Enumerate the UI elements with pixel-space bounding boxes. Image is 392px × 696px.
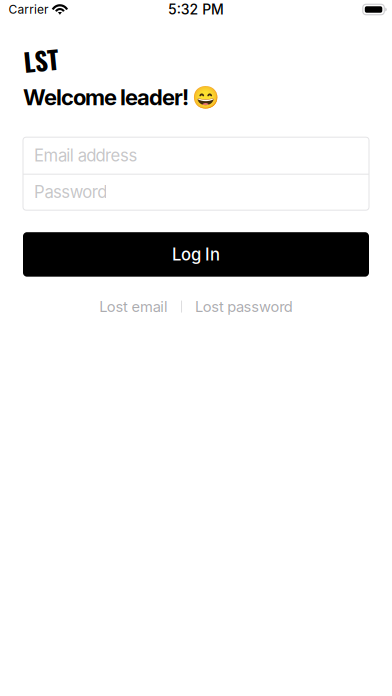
staticText: Carrier: [8, 2, 49, 17]
staticText: Welcome leader! 😄: [23, 84, 219, 111]
staticText: 5:32 PM: [168, 1, 224, 18]
staticText: LST: [23, 41, 58, 79]
staticText: Lost password: [195, 298, 293, 315]
button[interactable]: Log In: [23, 232, 369, 277]
button[interactable]: Lost password: [195, 298, 293, 315]
staticText: Email address: [34, 145, 137, 166]
button[interactable]: Lost email: [99, 298, 168, 315]
staticText: Log In: [172, 244, 220, 265]
staticText: Lost email: [99, 298, 168, 315]
staticText: Password: [34, 182, 107, 202]
